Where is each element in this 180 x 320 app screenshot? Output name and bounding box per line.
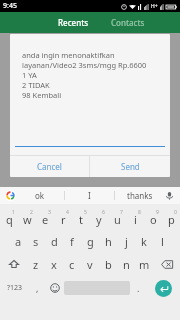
staticText: k (141, 234, 147, 249)
button[interactable]: . (130, 277, 147, 299)
staticText: 9:45 (3, 1, 17, 11)
button[interactable]: m (135, 254, 153, 274)
staticText: 5 (84, 209, 87, 216)
staticText: Recents (58, 17, 89, 28)
staticText: I (88, 190, 91, 201)
button[interactable]: b (99, 254, 117, 274)
staticText: n (123, 257, 130, 272)
staticText: x (51, 257, 57, 272)
button[interactable]: Cancel (10, 156, 89, 177)
button[interactable]: s (27, 231, 45, 251)
staticText: m (139, 257, 150, 272)
button[interactable]: 9 (144, 208, 162, 228)
staticText: r (61, 212, 66, 227)
staticText: H+ (151, 3, 158, 10)
button[interactable]: 8 (126, 208, 144, 228)
button[interactable]: x (45, 254, 63, 274)
staticText: Contacts (111, 17, 145, 28)
staticText: 2 (30, 209, 33, 216)
button[interactable]: v (81, 254, 99, 274)
staticText: f (70, 234, 74, 249)
button[interactable]: Emoji (46, 277, 64, 299)
staticText: 2 TIDAK (22, 80, 50, 90)
button[interactable]: Shift (0, 254, 27, 274)
staticText: h (105, 234, 112, 249)
staticText: e (42, 212, 49, 227)
button[interactable]: 5 (72, 208, 90, 228)
button[interactable] (15, 130, 165, 147)
staticText: q (6, 212, 13, 227)
staticText: . (137, 282, 140, 294)
button[interactable]: 3 (36, 208, 54, 228)
button[interactable]: thanks (115, 187, 164, 204)
button[interactable]: l (153, 231, 171, 251)
button[interactable]: k (135, 231, 153, 251)
button[interactable]: a (9, 231, 27, 251)
button[interactable]: g (81, 231, 99, 251)
button[interactable]: Send (90, 156, 170, 177)
button[interactable]: ok (16, 187, 64, 204)
button[interactable]: f (63, 231, 81, 251)
staticText: d (51, 234, 58, 249)
staticText: t (79, 212, 83, 227)
staticText: layanan/Video2 3sms/mgg Rp.6600 (22, 60, 147, 70)
staticText: 3 (48, 209, 51, 216)
staticText: i (134, 212, 137, 227)
button[interactable]: 0 (162, 208, 180, 228)
staticText: a (15, 234, 22, 249)
button[interactable]: c (63, 254, 81, 274)
staticText: 4 (66, 209, 69, 216)
staticText: s (33, 234, 39, 249)
staticText: p (168, 212, 175, 227)
button[interactable]: 6 (90, 208, 108, 228)
button[interactable]: 7 (108, 208, 126, 228)
staticText: 6 (102, 209, 105, 216)
staticText: c (69, 257, 75, 272)
staticText: b (105, 257, 112, 272)
staticText: 7 (120, 209, 123, 216)
button[interactable]: Contacts (105, 14, 151, 31)
staticText: 0 (174, 209, 177, 216)
staticText: z (33, 257, 39, 272)
button[interactable]: Enter (155, 280, 172, 297)
staticText: , (36, 282, 39, 294)
staticText: g (87, 234, 94, 249)
staticText: y (96, 212, 102, 227)
button[interactable]: j (117, 231, 135, 251)
staticText: ?123 (7, 283, 23, 293)
staticText: w (23, 212, 32, 227)
staticText: u (114, 212, 121, 227)
staticText: 98 Kembali (22, 90, 62, 100)
staticText: 1 (12, 209, 15, 216)
button[interactable]: Recents (52, 14, 95, 31)
staticText: o (150, 212, 157, 227)
button[interactable]: 2 (18, 208, 36, 228)
staticText: v (87, 257, 93, 272)
button[interactable]: n (117, 254, 135, 274)
staticText: 9 (156, 209, 159, 216)
staticText: anda ingin menonaktifkan (22, 50, 115, 60)
staticText: ok (35, 190, 45, 201)
button[interactable]: h (99, 231, 117, 251)
staticText: l (161, 234, 164, 249)
button[interactable]: Backspace (153, 254, 180, 274)
button[interactable]: z (27, 254, 45, 274)
button[interactable]: 1 (0, 208, 18, 228)
staticText: 1 YA (22, 70, 37, 80)
button[interactable]: Google (5, 190, 16, 201)
staticText: thanks (127, 190, 153, 201)
button[interactable]: I (65, 187, 114, 204)
staticText: j (125, 234, 128, 249)
button[interactable]: , (29, 277, 46, 299)
staticText: 8 (138, 209, 141, 216)
button[interactable]: ?123 (0, 277, 29, 299)
button[interactable]: d (45, 231, 63, 251)
button[interactable]: Voice input (164, 190, 175, 201)
staticText: Send (121, 161, 140, 172)
staticText: Cancel (37, 161, 62, 172)
button[interactable]: 4 (54, 208, 72, 228)
